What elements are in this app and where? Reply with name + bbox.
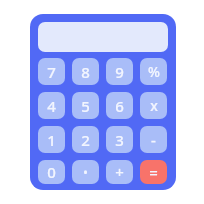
staticText: 1 bbox=[47, 130, 56, 150]
staticText: % bbox=[148, 62, 160, 81]
button[interactable]: Equals bbox=[140, 160, 167, 184]
staticText: - bbox=[151, 130, 156, 150]
staticText: 9 bbox=[115, 62, 124, 82]
button[interactable]: 8 bbox=[72, 58, 99, 85]
staticText: 8 bbox=[81, 62, 90, 82]
button[interactable]: Percent bbox=[140, 58, 167, 85]
staticText: 6 bbox=[115, 96, 124, 116]
staticText: 2 bbox=[81, 130, 90, 150]
button[interactable]: Minus bbox=[140, 126, 167, 153]
button[interactable]: 9 bbox=[106, 58, 133, 85]
button[interactable]: 1 bbox=[38, 126, 65, 153]
staticText: • bbox=[83, 164, 88, 180]
staticText: 3 bbox=[115, 130, 124, 150]
staticText: 4 bbox=[47, 96, 56, 116]
staticText: + bbox=[115, 162, 124, 182]
staticText: 5 bbox=[81, 96, 90, 116]
button[interactable]: 7 bbox=[38, 58, 65, 85]
staticText: 0 bbox=[47, 162, 56, 182]
staticText: = bbox=[149, 162, 158, 182]
button[interactable]: 5 bbox=[72, 92, 99, 119]
button[interactable]: Decimal point bbox=[72, 160, 99, 184]
button[interactable]: Plus bbox=[106, 160, 133, 184]
button[interactable]: 0 bbox=[38, 160, 65, 184]
button[interactable]: Display bbox=[38, 22, 168, 52]
button[interactable]: 6 bbox=[106, 92, 133, 119]
button[interactable]: 3 bbox=[106, 126, 133, 153]
button[interactable]: 4 bbox=[38, 92, 65, 119]
staticText: 7 bbox=[47, 62, 56, 82]
staticText: x bbox=[150, 96, 158, 115]
button[interactable]: Multiply bbox=[140, 92, 167, 119]
button[interactable]: 2 bbox=[72, 126, 99, 153]
